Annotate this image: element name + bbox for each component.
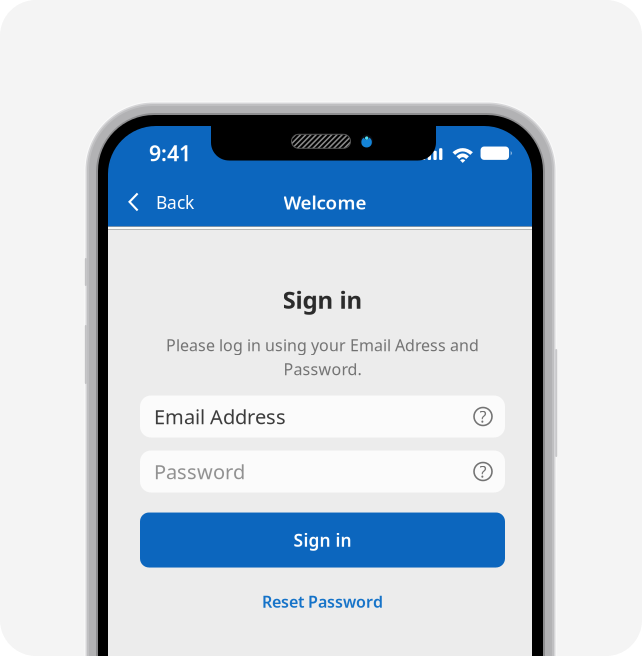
staticText: Password xyxy=(154,458,245,485)
staticText: Sign in xyxy=(282,284,362,315)
staticText: Sign in xyxy=(293,528,351,551)
staticText: Please log in using your Email Adress an… xyxy=(166,334,479,356)
staticText: Back xyxy=(156,191,194,214)
staticText: 9:41 xyxy=(149,139,191,167)
button[interactable]: Reset Password xyxy=(140,583,505,619)
staticText: ? xyxy=(479,461,486,482)
staticText: ? xyxy=(479,406,486,427)
button[interactable]: Email Address xyxy=(140,395,505,437)
button[interactable]: Sign in xyxy=(140,512,505,567)
button[interactable]: Password xyxy=(140,450,505,492)
staticText: Reset Password xyxy=(262,591,383,612)
button[interactable]: Back xyxy=(108,180,214,224)
staticText: Password. xyxy=(283,358,361,380)
staticText: Welcome xyxy=(283,190,366,215)
staticText: Email Address xyxy=(154,403,286,430)
